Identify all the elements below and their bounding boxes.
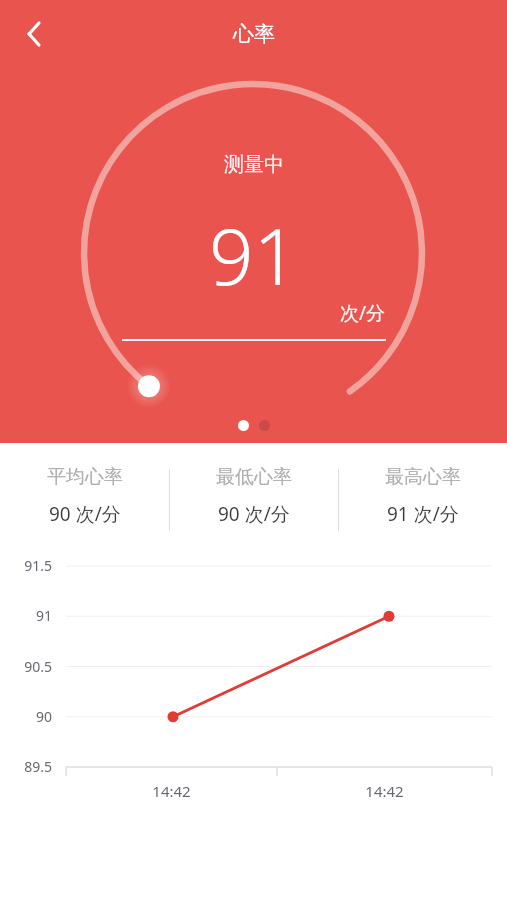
button[interactable]: 最低心率 [170,463,338,529]
staticText: 测量中 [224,152,284,177]
button[interactable]: 最高心率 [339,463,507,529]
staticText: 91.5 [0,556,52,575]
staticText: 89.5 [0,757,52,776]
staticText: 91 次/分 [387,501,459,527]
staticText: 最低心率 [216,465,292,489]
staticText: 次/分 [340,300,386,326]
staticText: 90 次/分 [218,501,290,527]
staticText: 90 [0,707,52,726]
staticText: 14:42 [277,781,492,801]
staticText: 90.5 [0,657,52,676]
staticText: 最高心率 [385,465,461,489]
staticText: 91 [0,606,52,625]
staticText: 14:42 [66,781,277,801]
staticText: 平均心率 [47,465,123,489]
button[interactable]: Back [10,10,58,58]
staticText: 90 次/分 [49,501,121,527]
staticText: 心率 [233,21,275,47]
button[interactable]: 平均心率 [0,463,169,529]
staticText: 91 [209,202,299,308]
